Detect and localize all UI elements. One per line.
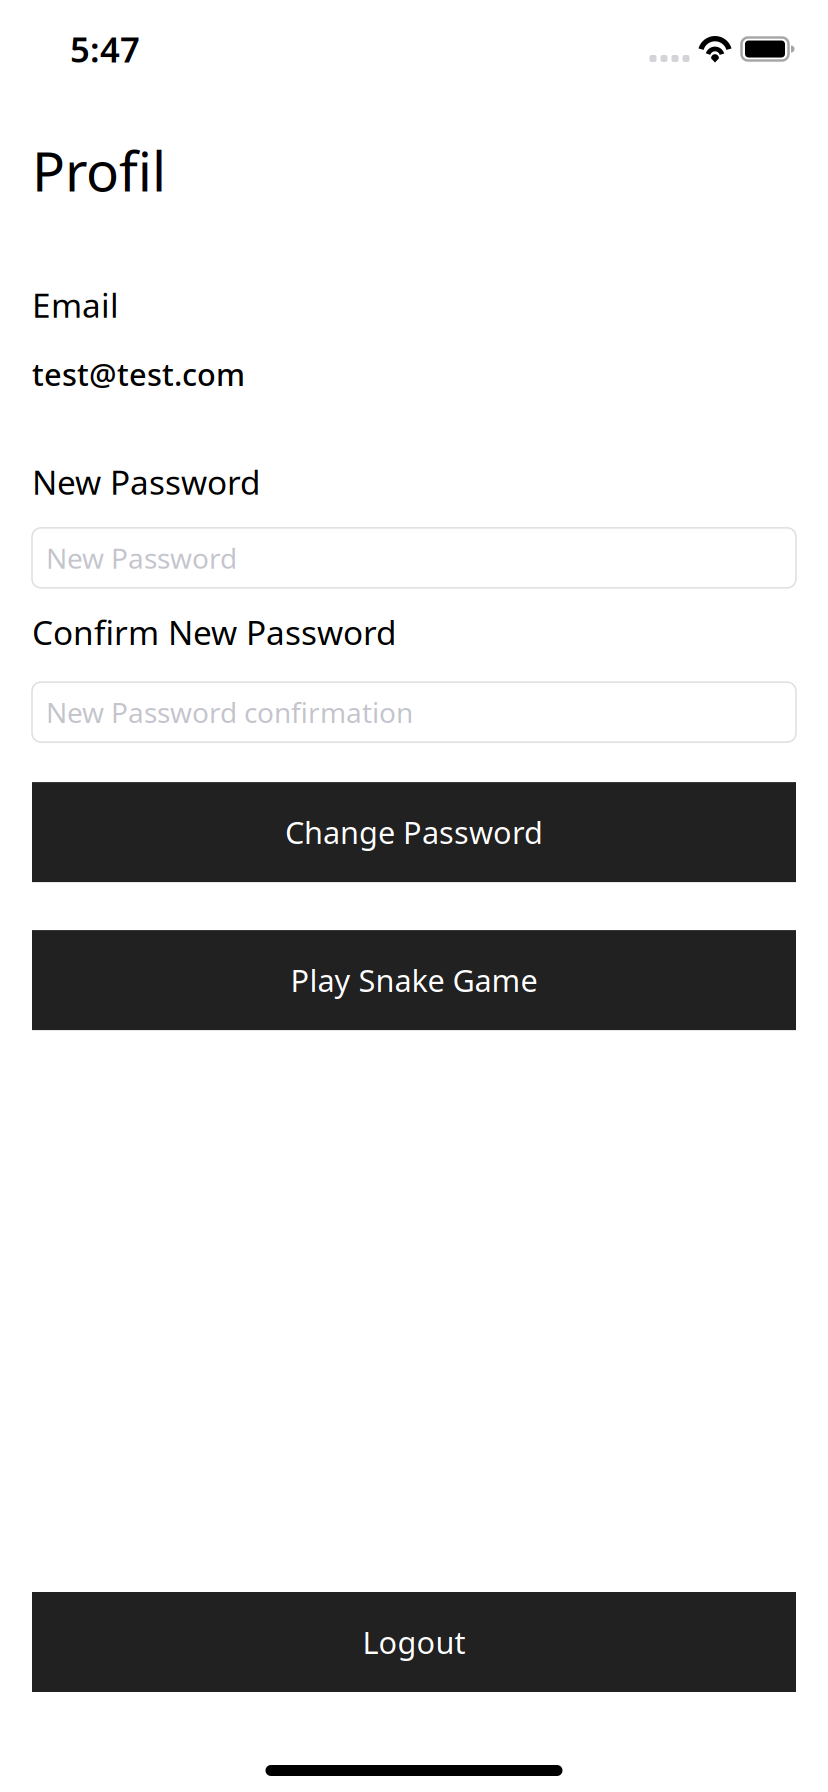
staticText: 5:47 <box>70 26 140 72</box>
staticText: Confirm New Password <box>32 610 397 654</box>
staticText: Profil <box>32 134 166 207</box>
button[interactable]: New Password confirmation <box>32 682 796 742</box>
staticText: New Password <box>32 460 261 504</box>
staticText: New Password confirmation <box>46 693 413 731</box>
staticText: Play Snake Game <box>290 960 537 1000</box>
button[interactable]: New Password <box>32 528 796 588</box>
staticText: New Password <box>46 539 237 576</box>
button[interactable]: Play Snake Game <box>32 930 796 1030</box>
staticText: Change Password <box>285 812 543 852</box>
button[interactable]: Logout <box>32 1592 796 1692</box>
staticText: Email <box>32 283 119 327</box>
staticText: test@test.com <box>32 354 245 395</box>
staticText: Logout <box>362 1622 465 1662</box>
button[interactable]: Change Password <box>32 782 796 882</box>
